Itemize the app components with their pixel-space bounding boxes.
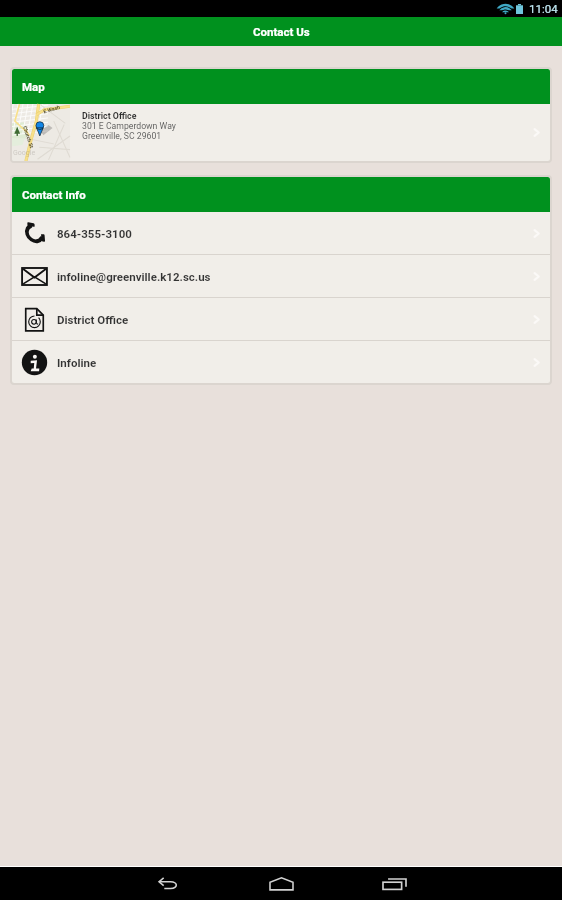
staticText: infoline@greenville.k12.sc.us: [57, 270, 523, 283]
staticText: District Office: [57, 313, 523, 326]
button[interactable]: Back: [112, 867, 225, 900]
staticText: Greenville, SC 29601: [82, 131, 162, 141]
button[interactable]: infoline@greenville.k12.sc.us: [12, 255, 550, 297]
staticText: Contact Info: [22, 188, 86, 201]
staticText: Google: [13, 149, 36, 157]
button[interactable]: District Office: [12, 298, 550, 340]
button[interactable]: E Wash: [12, 104, 550, 161]
staticText: Church St: [22, 125, 35, 149]
button[interactable]: 864-355-3100: [12, 212, 550, 254]
staticText: 864-355-3100: [57, 227, 523, 240]
button[interactable]: Home: [225, 867, 338, 900]
staticText: E Wash: [42, 104, 61, 114]
staticText: 301 E Camperdown Way: [82, 121, 176, 131]
staticText: 11:04: [529, 2, 558, 15]
staticText: Map: [22, 80, 45, 93]
button[interactable]: Infoline: [12, 341, 550, 383]
staticText: Contact Us: [253, 25, 310, 38]
staticText: District Office: [82, 111, 137, 121]
button[interactable]: Recents: [338, 867, 451, 900]
staticText: Infoline: [57, 356, 523, 369]
